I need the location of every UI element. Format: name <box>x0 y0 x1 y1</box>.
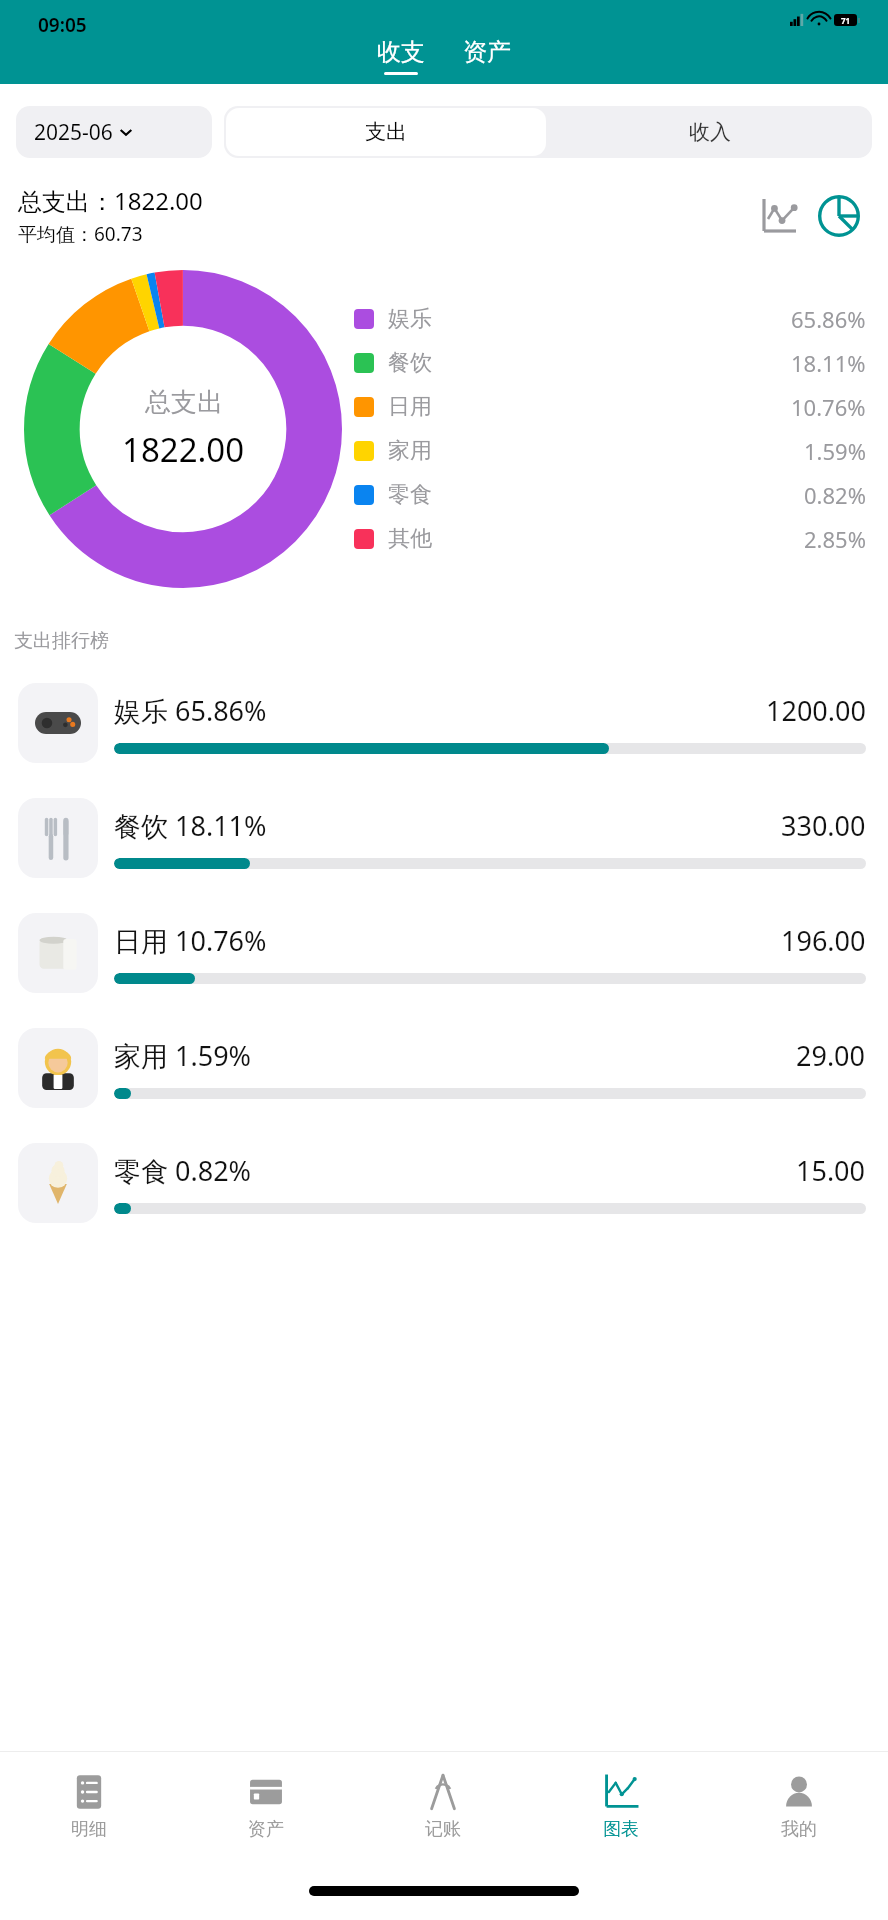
staticText: 娱乐 65.86% <box>114 692 267 729</box>
staticText: 收支 <box>377 37 425 67</box>
button[interactable]: 餐饮 18.11% <box>0 780 888 895</box>
staticText: 资产 <box>463 37 511 67</box>
button[interactable]: 家用 <box>354 429 866 473</box>
staticText: 零食 0.82% <box>114 1152 252 1189</box>
staticText: 资产 <box>248 1818 284 1841</box>
staticText: 65.86% <box>791 304 866 334</box>
button[interactable]: 零食 0.82% <box>0 1125 888 1240</box>
button[interactable]: 零食 <box>354 473 866 517</box>
staticText: 支出 <box>365 119 407 145</box>
staticText: 196.00 <box>781 922 866 959</box>
button[interactable]: 其他 <box>354 517 866 561</box>
staticText: 零食 <box>388 481 432 509</box>
staticText: 29.00 <box>796 1037 866 1074</box>
button[interactable]: 日用 10.76% <box>0 895 888 1010</box>
button[interactable]: Line chart <box>752 189 806 243</box>
staticText: 0.82% <box>804 480 866 510</box>
button[interactable]: 娱乐 65.86% <box>0 665 888 780</box>
staticText: 娱乐 <box>388 305 432 333</box>
button[interactable]: 明细 <box>0 1752 177 1862</box>
button[interactable]: Pie chart <box>812 189 866 243</box>
staticText: 日用 10.76% <box>114 922 267 959</box>
staticText: 1.59% <box>804 436 866 466</box>
staticText: 日用 <box>388 393 432 421</box>
staticText: 总支出 <box>145 386 223 419</box>
staticText: 09:05 <box>38 12 87 38</box>
button[interactable]: 收支 <box>371 37 431 82</box>
staticText: 总支出：1822.00 <box>18 184 203 217</box>
staticText: 平均值：60.73 <box>18 221 143 247</box>
staticText: 餐饮 <box>388 349 432 377</box>
staticText: 记账 <box>425 1818 461 1841</box>
staticText: 收入 <box>689 119 731 145</box>
staticText: 10.76% <box>791 392 866 422</box>
staticText: 家用 <box>388 437 432 465</box>
button[interactable]: 图表 <box>532 1752 710 1862</box>
button[interactable]: 日用 <box>354 385 866 429</box>
button[interactable]: 支出 <box>226 108 546 156</box>
button[interactable]: 记账 <box>354 1752 532 1862</box>
staticText: 2.85% <box>804 524 866 554</box>
staticText: 15.00 <box>796 1152 866 1189</box>
button[interactable]: 娱乐 <box>354 297 866 341</box>
button[interactable]: 收入 <box>548 106 872 158</box>
button[interactable]: 我的 <box>710 1752 888 1862</box>
staticText: 我的 <box>781 1818 817 1841</box>
staticText: 明细 <box>71 1818 107 1841</box>
staticText: 餐饮 18.11% <box>114 807 267 844</box>
button[interactable]: 家用 1.59% <box>0 1010 888 1125</box>
staticText: 2025-06 <box>34 118 113 147</box>
staticText: 支出排行榜 <box>14 629 109 653</box>
button[interactable]: 2025-06 <box>16 106 212 158</box>
staticText: 其他 <box>388 525 432 553</box>
staticText: 330.00 <box>781 807 866 844</box>
button[interactable]: 资产 <box>177 1752 354 1862</box>
staticText: 71 <box>841 15 851 26</box>
staticText: 1822.00 <box>122 427 245 472</box>
staticText: 图表 <box>603 1818 639 1841</box>
staticText: 1200.00 <box>766 692 866 729</box>
staticText: 18.11% <box>791 348 866 378</box>
button[interactable]: 餐饮 <box>354 341 866 385</box>
button[interactable]: 资产 <box>457 37 517 82</box>
staticText: 家用 1.59% <box>114 1037 252 1074</box>
